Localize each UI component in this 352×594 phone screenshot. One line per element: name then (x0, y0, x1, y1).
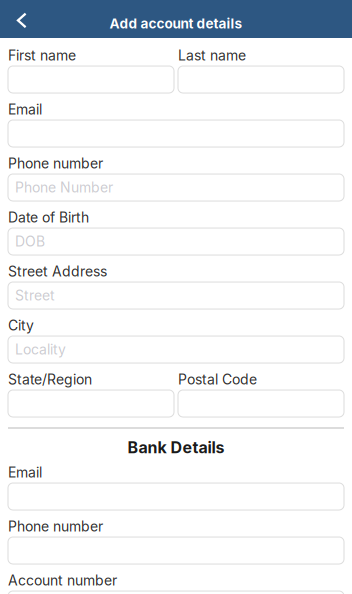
staticText: State/Region (8, 371, 92, 388)
button[interactable]: Back (0, 0, 52, 38)
staticText: Locality (15, 341, 66, 358)
staticText: Phone number (8, 155, 103, 172)
staticText: Date of Birth (8, 209, 89, 226)
staticText: Phone number (8, 518, 103, 535)
staticText: Street (15, 287, 55, 304)
staticText: City (8, 317, 34, 334)
staticText: DOB (15, 233, 45, 250)
staticText: Bank Details (127, 438, 224, 457)
staticText: Account number (8, 572, 117, 589)
staticText: Email (8, 101, 42, 118)
staticText: Email (8, 464, 42, 481)
staticText: Add account details (109, 15, 242, 32)
staticText: Street Address (8, 263, 107, 280)
staticText: First name (8, 47, 76, 64)
staticText: Postal Code (178, 371, 257, 388)
staticText: Last name (178, 47, 246, 64)
staticText: Phone Number (15, 179, 113, 196)
